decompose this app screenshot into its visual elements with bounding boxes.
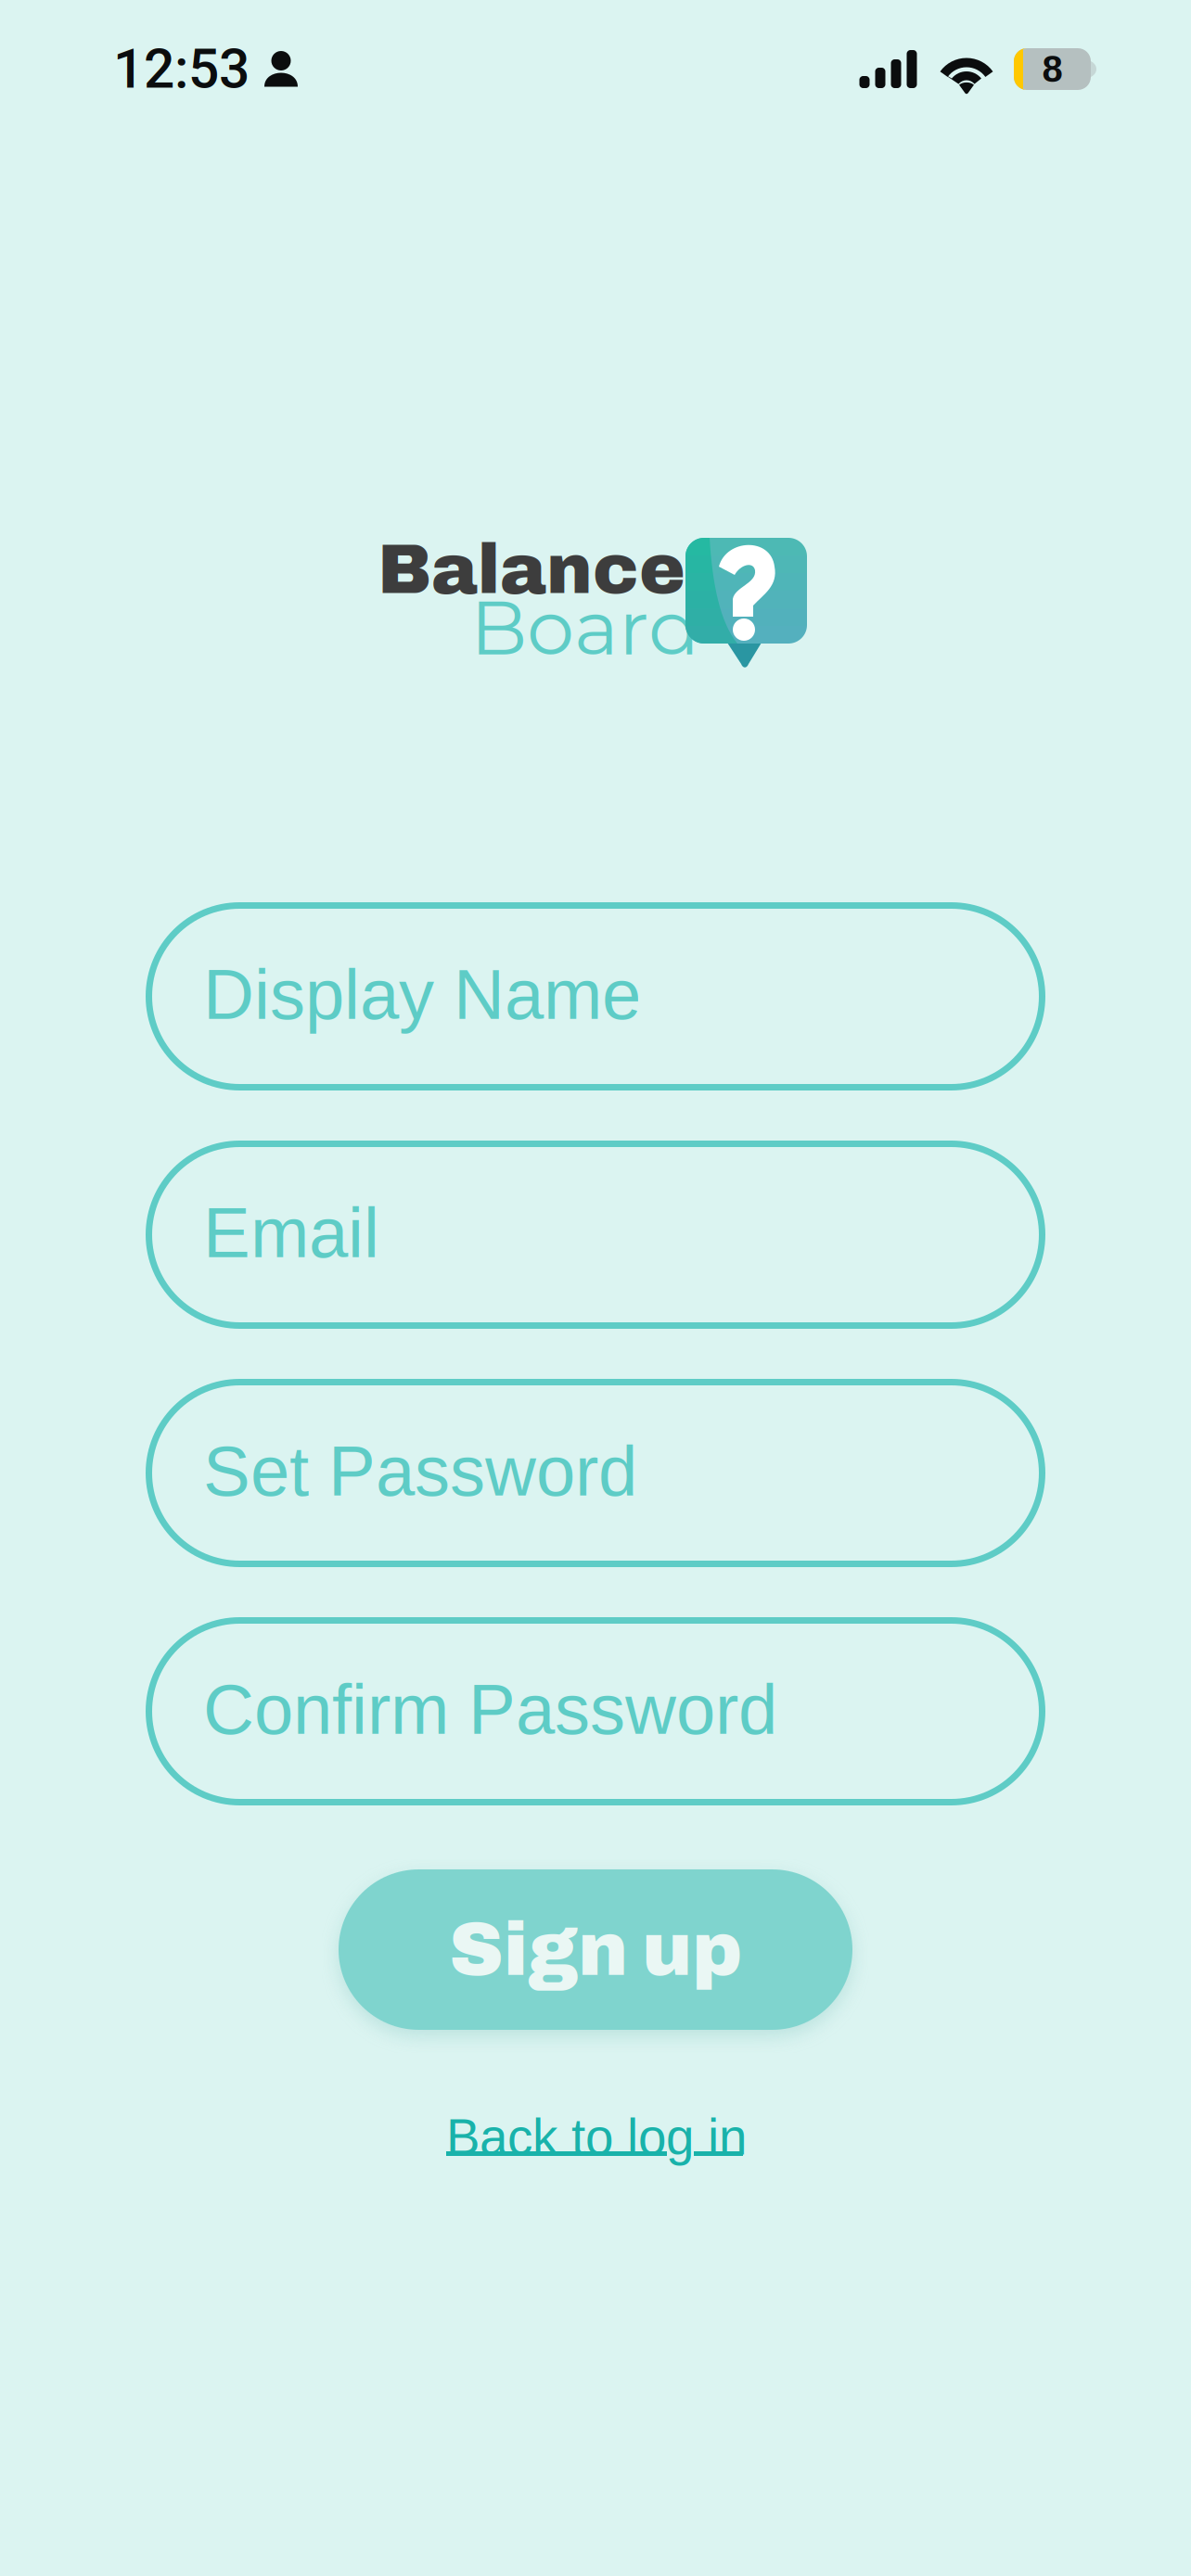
staticText: Set Password: [203, 1432, 637, 1510]
staticText: Sign up: [449, 1909, 742, 1991]
staticText: Display Name: [203, 955, 641, 1034]
button[interactable]: Sign up: [339, 1869, 852, 2030]
staticText: Email: [203, 1193, 379, 1272]
staticText: 12:53: [113, 37, 250, 101]
staticText: Balance: [378, 532, 685, 608]
button[interactable]: Set Password: [146, 1379, 1045, 1567]
staticText: Confirm Password: [203, 1670, 777, 1749]
button[interactable]: Email: [146, 1141, 1045, 1329]
button[interactable]: Back to log in: [446, 2109, 762, 2174]
button[interactable]: Display Name: [146, 902, 1045, 1090]
staticText: 8: [1042, 48, 1063, 90]
staticText: Board: [470, 581, 699, 673]
button[interactable]: Confirm Password: [146, 1617, 1045, 1805]
staticText: Back to log in: [446, 2109, 747, 2165]
